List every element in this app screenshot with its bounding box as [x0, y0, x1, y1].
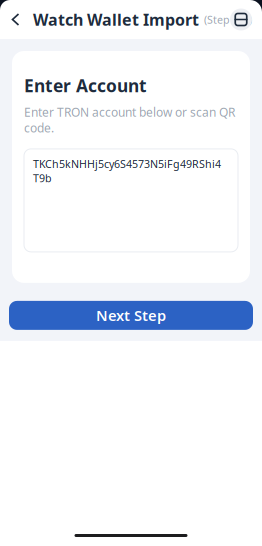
staticText: Enter Account: [24, 74, 147, 97]
button[interactable]: Next Step: [9, 301, 253, 330]
staticText: Next Step: [96, 306, 166, 325]
staticText: TKCh5kNHHj5cy6S4573N5iFg49RShi4T9b: [33, 157, 221, 185]
button[interactable]: Paired device: [230, 8, 252, 30]
button[interactable]: Back: [7, 8, 25, 30]
staticText: (Step 1/3): [204, 12, 252, 27]
staticText: Watch Wallet Import: [33, 9, 199, 30]
staticText: Enter TRON account below or scan QR code…: [24, 104, 235, 136]
